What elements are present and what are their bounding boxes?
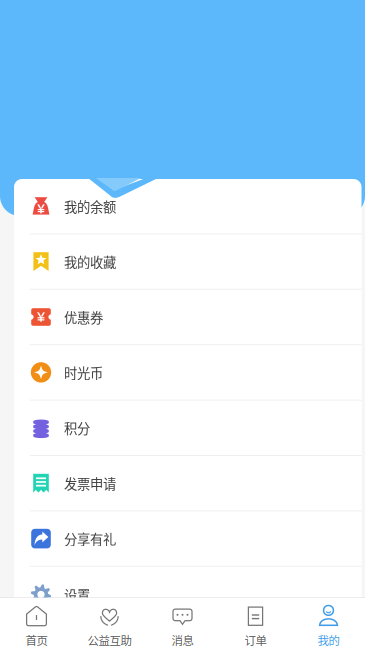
button[interactable]: 积分	[14, 401, 361, 456]
staticText: 设置	[64, 585, 90, 604]
button[interactable]: 我的余额	[14, 179, 361, 234]
staticText: 我的	[317, 632, 339, 648]
staticText: 积分	[64, 418, 90, 437]
button[interactable]: 订单	[219, 598, 292, 648]
button[interactable]: 公益互助	[73, 598, 146, 648]
button[interactable]: 我的收藏	[14, 234, 361, 290]
staticText: 首页	[25, 632, 47, 648]
staticText: 发票申请	[64, 473, 116, 493]
staticText: 我的收藏	[64, 252, 116, 271]
button[interactable]: 时光币	[14, 345, 361, 401]
button[interactable]: 首页	[0, 598, 73, 648]
button[interactable]: 分享有礼	[14, 511, 361, 567]
button[interactable]: 我的	[292, 598, 365, 648]
button[interactable]: 优惠券	[14, 290, 361, 345]
staticText: 公益互助	[87, 632, 131, 648]
staticText: 我的余额	[64, 196, 116, 216]
button[interactable]: 消息	[146, 598, 219, 648]
staticText: 订单	[244, 632, 266, 648]
button[interactable]: 发票申请	[14, 456, 361, 511]
button[interactable]: 设置	[14, 567, 361, 622]
staticText: 优惠券	[64, 307, 103, 327]
staticText: 消息	[171, 632, 193, 648]
staticText: 分享有礼	[64, 529, 116, 548]
staticText: 时光币	[64, 363, 103, 382]
